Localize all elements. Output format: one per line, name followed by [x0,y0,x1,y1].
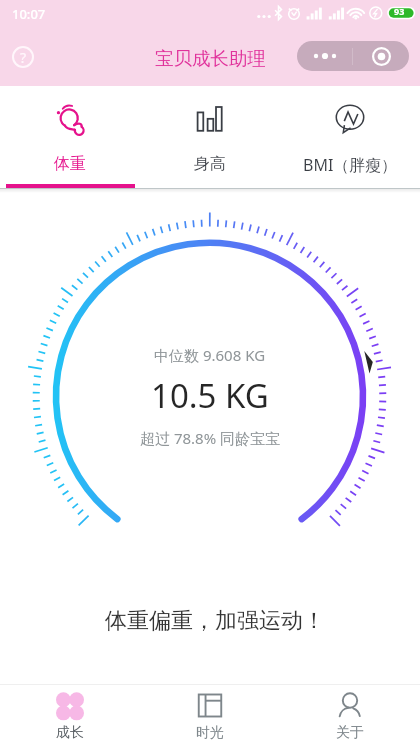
staticText: 时光 [196,724,224,742]
staticText: 成长 [56,724,84,742]
staticText: ? [20,48,27,67]
button[interactable]: 身高 [140,86,280,188]
staticText: BMI（胖瘦） [303,154,398,176]
button[interactable]: Help [3,37,43,77]
staticText: 10:07 [12,5,46,23]
staticText: 中位数 9.608 KG [154,345,266,365]
button[interactable]: 成长 [0,684,140,747]
button[interactable]: 关于 [280,684,420,747]
staticText: 93 [394,5,405,17]
button[interactable]: More options [297,41,352,71]
staticText: 超过 78.8% 同龄宝宝 [140,428,281,448]
staticText: 体重偏重，加强运动！ [105,607,325,635]
staticText: 体重 [54,154,86,174]
staticText: 关于 [336,724,364,742]
button[interactable]: Close mini program [353,41,409,71]
button[interactable]: 体重 [0,86,140,188]
staticText: 10.5 KG [151,373,269,418]
staticText: 宝贝成长助理 [155,47,266,70]
button[interactable]: 时光 [140,684,280,747]
staticText: 身高 [194,154,226,174]
button[interactable]: BMI（胖瘦） [280,86,420,188]
